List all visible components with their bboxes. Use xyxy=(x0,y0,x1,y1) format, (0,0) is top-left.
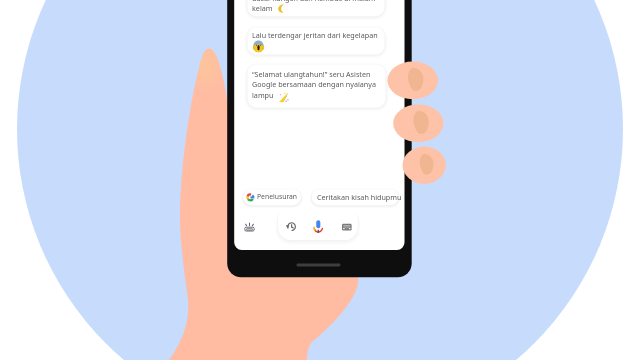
button[interactable]: Google Lens xyxy=(241,216,263,238)
staticText: “Selamat ulangtahun!” seru Asisten Googl… xyxy=(252,69,382,105)
button[interactable]: Penelusuran xyxy=(244,188,303,207)
button[interactable]: Voice search xyxy=(309,215,331,237)
staticText: Ceritakan kisah hidupmu xyxy=(317,192,407,203)
staticText: dasar kangen dan hembus di malam kelam xyxy=(252,0,382,19)
button[interactable]: History xyxy=(281,216,303,238)
staticText: Penelusuran xyxy=(257,192,307,203)
button[interactable]: Keyboard xyxy=(337,216,359,238)
staticText: Lalu terdengar jeritan dari kegelapan xyxy=(252,30,382,44)
button[interactable]: Ceritakan kisah hidupmu xyxy=(312,188,400,207)
